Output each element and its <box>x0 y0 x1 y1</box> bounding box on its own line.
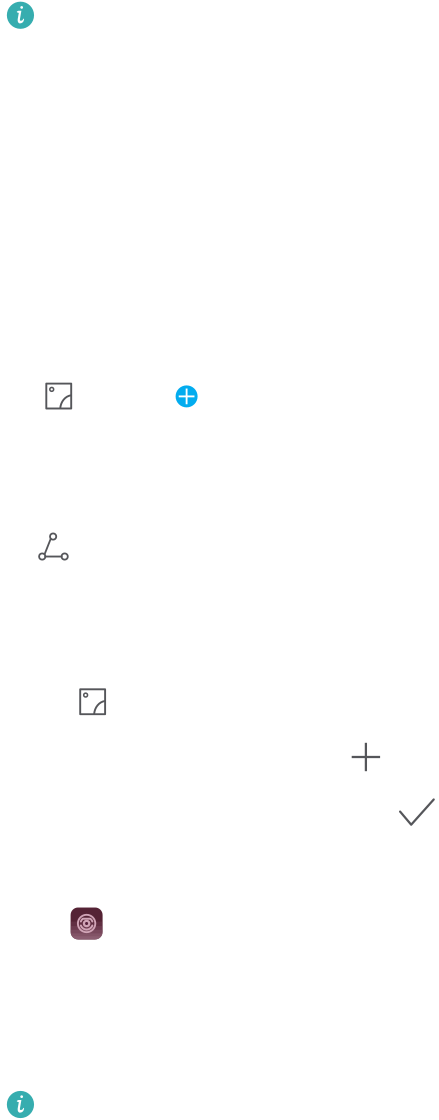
button[interactable]: Add <box>0 0 439 1120</box>
button[interactable]: Add <box>0 0 439 1120</box>
button[interactable]: Information <box>0 0 439 1120</box>
button[interactable]: Information <box>0 0 439 1120</box>
button[interactable]: Done <box>0 0 439 1120</box>
